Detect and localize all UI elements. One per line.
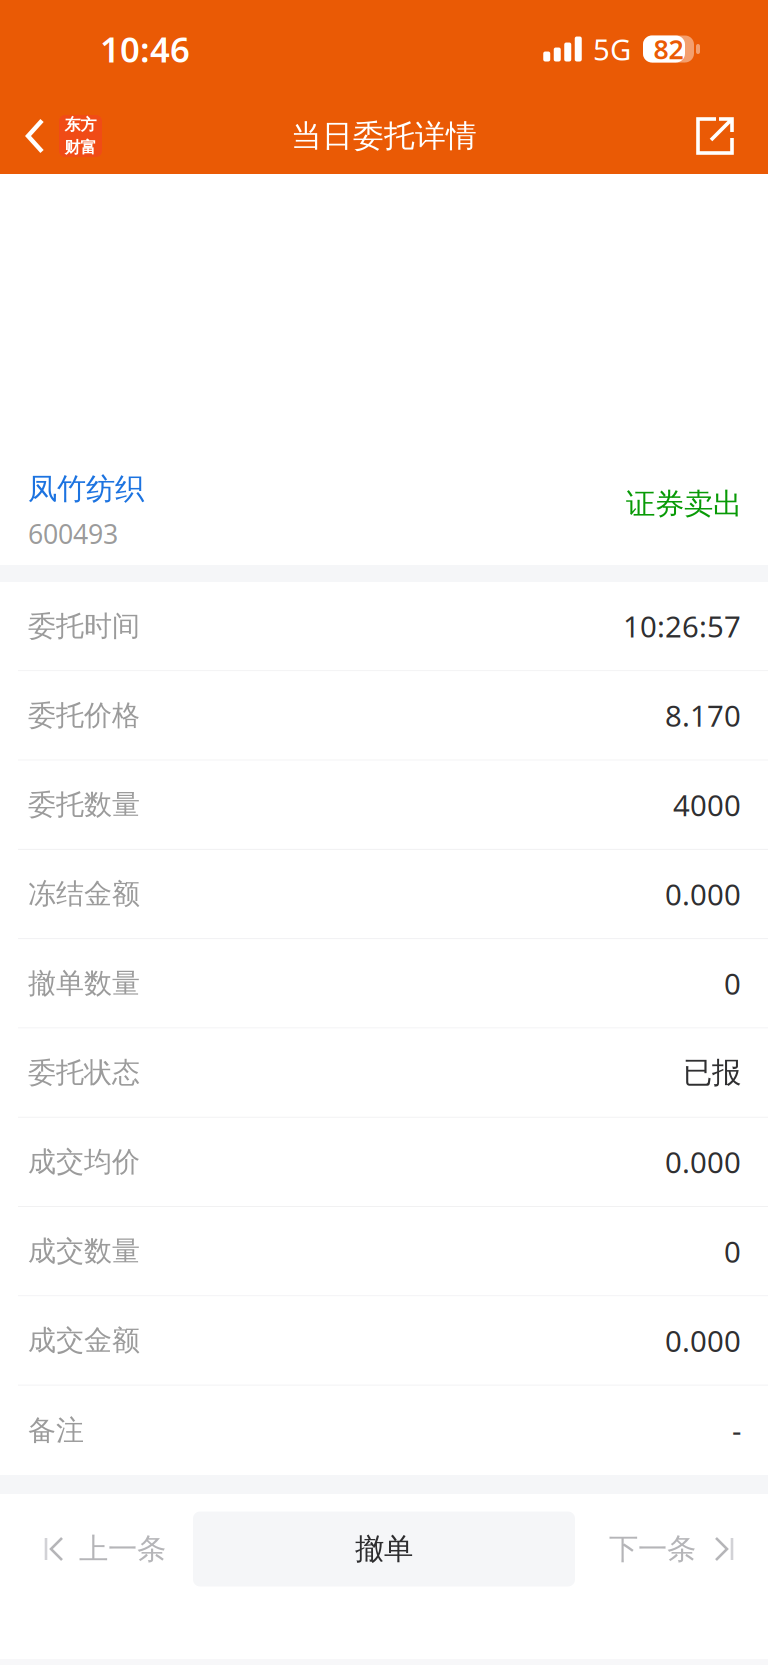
staticText: 委托状态: [28, 1055, 140, 1090]
staticText: 0: [724, 1232, 741, 1271]
staticText: 委托数量: [28, 788, 140, 822]
staticText: 成交数量: [28, 1234, 140, 1268]
staticText: 10:26:57: [623, 607, 741, 646]
staticText: 撤单: [355, 1531, 413, 1567]
button[interactable]: 上一条: [0, 1494, 193, 1604]
staticText: 下一条: [609, 1531, 696, 1567]
staticText: 8.170: [665, 696, 741, 735]
staticText: 600493: [28, 516, 118, 551]
staticText: 证券卖出: [626, 486, 742, 522]
staticText: 委托价格: [28, 698, 140, 733]
staticText: 82: [653, 31, 683, 67]
button[interactable]: 返回东方财富: [0, 98, 116, 174]
staticText: -: [732, 1411, 741, 1450]
staticText: 成交均价: [28, 1145, 140, 1179]
staticText: 委托时间: [28, 609, 140, 643]
staticText: 备注: [28, 1413, 84, 1448]
staticText: 0.000: [665, 1142, 741, 1181]
staticText: 上一条: [79, 1531, 166, 1567]
staticText: 4000: [673, 785, 741, 824]
button[interactable]: 下一条: [575, 1494, 768, 1604]
staticText: 0: [724, 964, 741, 1003]
staticText: 已报: [683, 1055, 741, 1091]
staticText: 0.000: [665, 875, 741, 914]
button[interactable]: 撤单: [193, 1494, 575, 1604]
staticText: 东方: [64, 115, 96, 134]
staticText: 0.000: [665, 1321, 741, 1360]
button[interactable]: 分享: [676, 98, 768, 174]
staticText: 10:46: [100, 26, 190, 72]
staticText: 当日委托详情: [291, 117, 477, 155]
staticText: 财富: [64, 137, 96, 157]
staticText: 撤单数量: [28, 966, 140, 1001]
staticText: 5G: [593, 29, 631, 68]
staticText: 凤竹纺织: [28, 471, 144, 507]
staticText: 成交金额: [28, 1323, 140, 1358]
staticText: 冻结金额: [28, 877, 140, 911]
